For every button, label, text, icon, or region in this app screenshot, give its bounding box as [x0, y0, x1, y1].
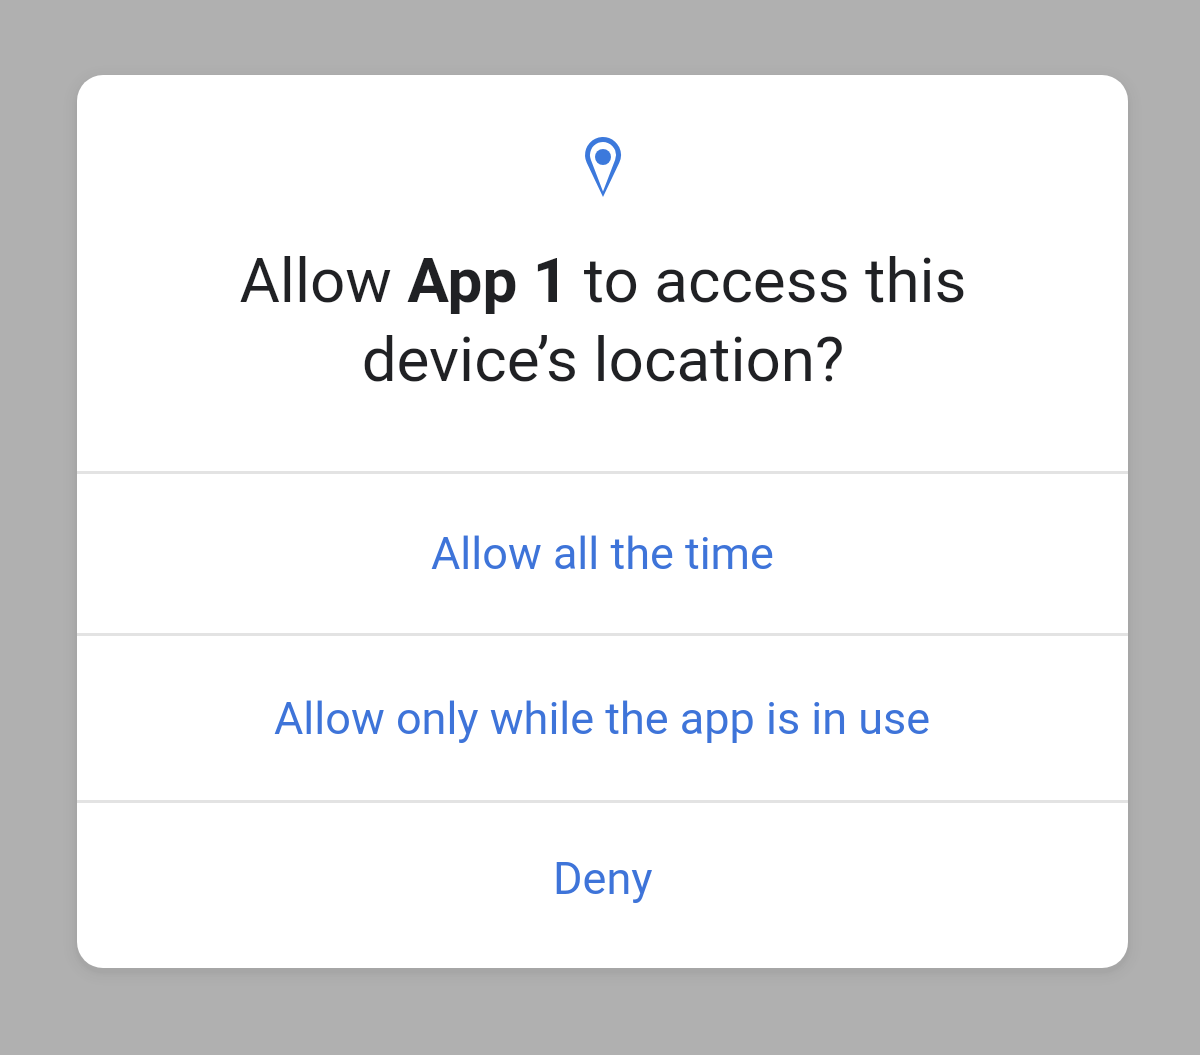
button[interactable]: Allow all the time — [77, 474, 1128, 633]
staticText: Deny — [553, 852, 653, 905]
staticText: Allow all the time — [431, 527, 774, 580]
button[interactable]: Allow only while the app is in use — [77, 636, 1128, 800]
button[interactable]: Deny — [77, 803, 1128, 968]
staticText: Allow App 1 to access this device’s loca… — [239, 244, 967, 396]
staticText: Allow only while the app is in use — [274, 692, 931, 745]
